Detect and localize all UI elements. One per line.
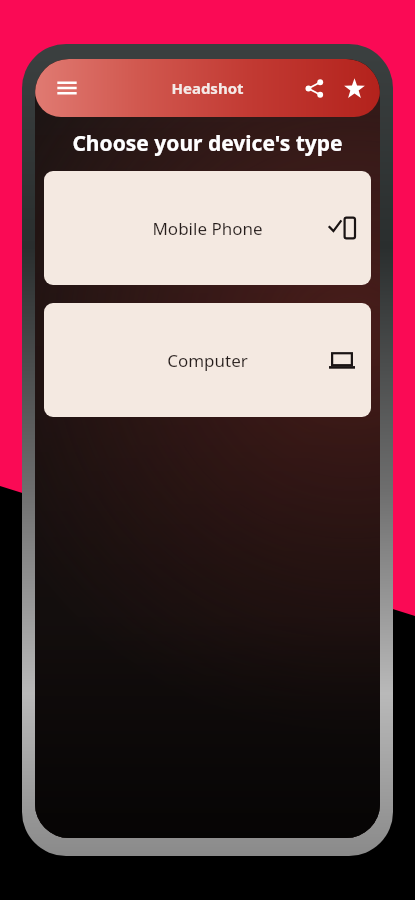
staticText: Mobile Phone — [152, 217, 263, 240]
button[interactable]: Share — [294, 68, 334, 108]
button[interactable]: Computer — [44, 303, 371, 417]
staticText: Choose your device's type — [72, 129, 343, 158]
staticText: Headshot — [171, 78, 244, 98]
staticText: Choose your device's type — [72, 129, 343, 158]
button[interactable]: Mobile Phone — [44, 171, 371, 285]
staticText: Computer — [167, 349, 248, 372]
button[interactable]: Open navigation menu — [45, 66, 89, 110]
button[interactable]: Favorite — [334, 68, 374, 108]
